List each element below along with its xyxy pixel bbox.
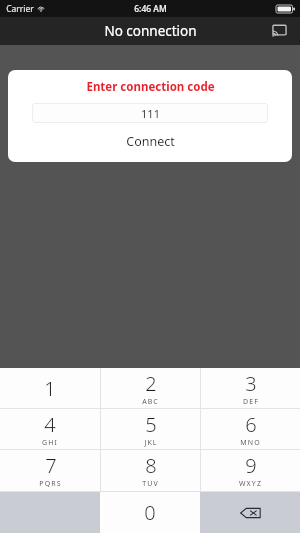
- staticText: 111: [141, 106, 160, 121]
- staticText: 9: [245, 452, 257, 479]
- staticText: 0: [144, 499, 156, 526]
- staticText: 5: [145, 411, 157, 438]
- button[interactable]: 1: [0, 368, 100, 408]
- staticText: ABC: [142, 397, 159, 407]
- staticText: 7: [45, 452, 57, 479]
- button[interactable]: Cast: [267, 19, 291, 43]
- staticText: 8: [145, 452, 157, 479]
- staticText: WXYZ: [239, 479, 262, 489]
- button[interactable]: 9: [201, 450, 300, 491]
- staticText: Connect: [126, 133, 175, 150]
- button[interactable]: Connect: [8, 128, 292, 155]
- staticText: 1: [44, 375, 56, 402]
- button[interactable]: 111: [32, 103, 268, 123]
- staticText: Carrier: [6, 3, 34, 15]
- staticText: GHI: [42, 438, 58, 448]
- staticText: PQRS: [39, 479, 62, 489]
- button[interactable]: Delete: [200, 492, 300, 533]
- button[interactable]: 8: [101, 450, 200, 491]
- button[interactable]: 3: [201, 368, 300, 408]
- staticText: No connection: [104, 22, 197, 40]
- button[interactable]: 5: [101, 409, 200, 449]
- staticText: TUV: [142, 479, 159, 489]
- staticText: 6:46 AM: [134, 3, 167, 15]
- staticText: 3: [245, 370, 257, 397]
- button[interactable]: 2: [101, 368, 200, 408]
- button[interactable]: 0: [100, 492, 200, 533]
- staticText: JKL: [144, 438, 158, 448]
- staticText: 6: [245, 411, 257, 438]
- staticText: 2: [145, 370, 157, 397]
- button[interactable]: 7: [0, 450, 100, 491]
- button[interactable]: 6: [201, 409, 300, 449]
- staticText: MNO: [240, 438, 261, 448]
- staticText: Enter connection code: [86, 79, 215, 95]
- staticText: 4: [44, 411, 56, 438]
- button[interactable]: 4: [0, 409, 100, 449]
- staticText: DEF: [243, 397, 259, 407]
